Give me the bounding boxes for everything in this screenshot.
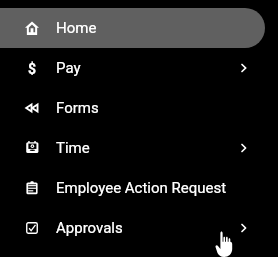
staticText: Time	[56, 139, 90, 157]
button[interactable]: $	[0, 48, 278, 88]
other: Expand	[238, 62, 250, 74]
other: Expand	[238, 142, 250, 154]
button[interactable]: Time	[0, 128, 278, 168]
other: Pointer	[215, 230, 233, 256]
staticText: Approvals	[56, 219, 123, 237]
staticText: $	[28, 61, 37, 75]
staticText: Forms	[56, 99, 99, 117]
other: Expand	[238, 222, 250, 234]
staticText: Pay	[56, 59, 81, 77]
button[interactable]: Employee Action Request	[0, 168, 278, 208]
button[interactable]: Forms	[0, 88, 278, 128]
staticText: Employee Action Request	[56, 179, 227, 197]
staticText: Home	[56, 19, 97, 37]
button[interactable]: Approvals	[0, 208, 278, 248]
button[interactable]: Home	[0, 8, 265, 48]
